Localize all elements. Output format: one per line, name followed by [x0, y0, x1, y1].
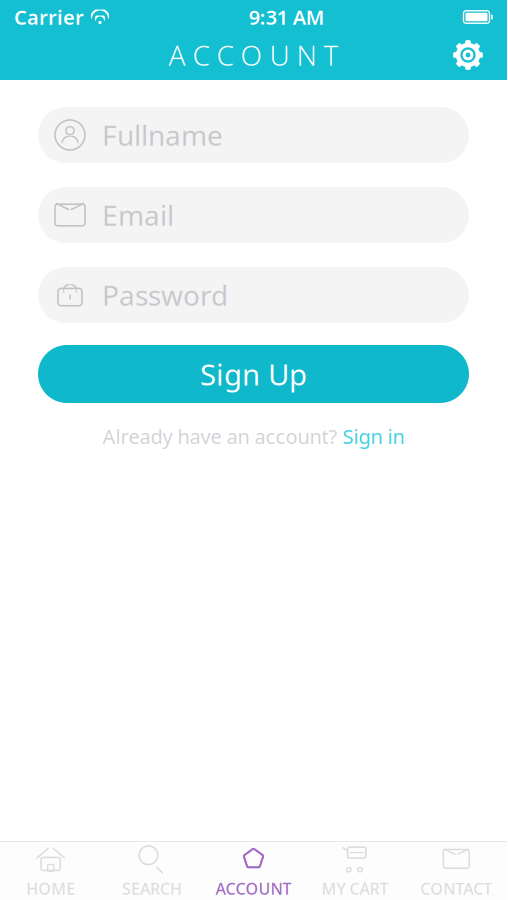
staticText: SEARCH	[122, 878, 182, 899]
staticText: Password	[102, 276, 228, 314]
button[interactable]: Sign Up	[38, 345, 469, 403]
staticText: Carrier	[14, 4, 84, 30]
button[interactable]: Password	[38, 267, 469, 323]
button[interactable]: My Cart	[304, 837, 406, 900]
staticText: Sign in	[342, 423, 404, 450]
staticText: Email	[102, 196, 174, 234]
button[interactable]: Home	[0, 837, 101, 900]
button[interactable]: Fullname	[38, 107, 469, 163]
staticText: ACCOUNT	[215, 878, 291, 899]
button[interactable]: Account	[203, 837, 304, 900]
button[interactable]: Search	[101, 837, 203, 900]
staticText: Fullname	[102, 116, 223, 154]
button[interactable]: Settings	[443, 34, 493, 76]
button[interactable]: Email	[38, 187, 469, 243]
button[interactable]: Contact	[406, 837, 507, 900]
button[interactable]: Already have an account?	[94, 419, 412, 454]
staticText: HOME	[26, 878, 75, 899]
staticText: MY CART	[321, 878, 388, 899]
staticText: Already have an account?	[102, 423, 337, 450]
staticText: CONTACT	[420, 878, 492, 899]
staticText: 9:31 AM	[249, 4, 325, 30]
staticText: Sign Up	[200, 354, 307, 393]
staticText: A C C O U N T	[168, 36, 338, 74]
